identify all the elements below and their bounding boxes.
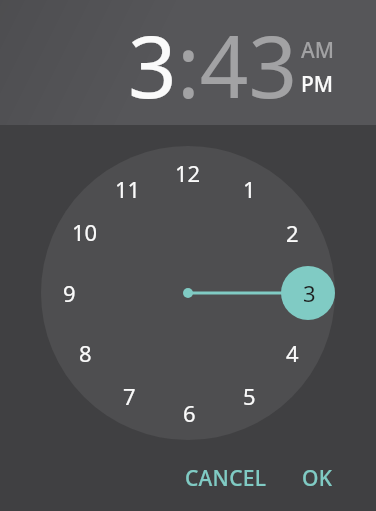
staticText: 5: [243, 381, 256, 411]
staticText: AM: [301, 36, 335, 65]
button[interactable]: AM: [301, 36, 335, 65]
button[interactable]: 5: [225, 372, 273, 420]
button[interactable]: 2: [268, 209, 316, 257]
staticText: OK: [302, 464, 333, 493]
button[interactable]: 1: [225, 165, 273, 213]
button[interactable]: 7: [105, 372, 153, 420]
staticText: 9: [63, 278, 76, 308]
button[interactable]: 3: [285, 269, 333, 317]
staticText: 4: [286, 338, 299, 368]
staticText: PM: [301, 70, 334, 99]
staticText: 12: [175, 158, 201, 188]
staticText: 8: [79, 338, 92, 368]
staticText: CANCEL: [185, 464, 267, 493]
staticText: :43: [177, 7, 298, 123]
button[interactable]: 6: [165, 389, 213, 437]
button[interactable]: 11: [104, 165, 152, 213]
button[interactable]: :43: [177, 7, 298, 123]
staticText: 6: [183, 398, 196, 428]
staticText: 10: [72, 217, 98, 247]
button[interactable]: OK: [289, 454, 345, 502]
staticText: 3: [303, 278, 316, 308]
button[interactable]: 10: [61, 208, 109, 256]
staticText: 7: [123, 381, 136, 411]
staticText: 2: [286, 218, 299, 248]
button[interactable]: CANCEL: [175, 454, 277, 502]
button[interactable]: 3: [128, 7, 177, 123]
button[interactable]: 4: [268, 329, 316, 377]
button[interactable]: 8: [61, 329, 109, 377]
button[interactable]: PM: [301, 70, 334, 99]
staticText: 3: [128, 7, 177, 123]
button[interactable]: 9: [45, 269, 93, 317]
button[interactable]: 12: [164, 149, 212, 197]
staticText: 1: [243, 174, 256, 204]
staticText: 11: [115, 174, 141, 204]
